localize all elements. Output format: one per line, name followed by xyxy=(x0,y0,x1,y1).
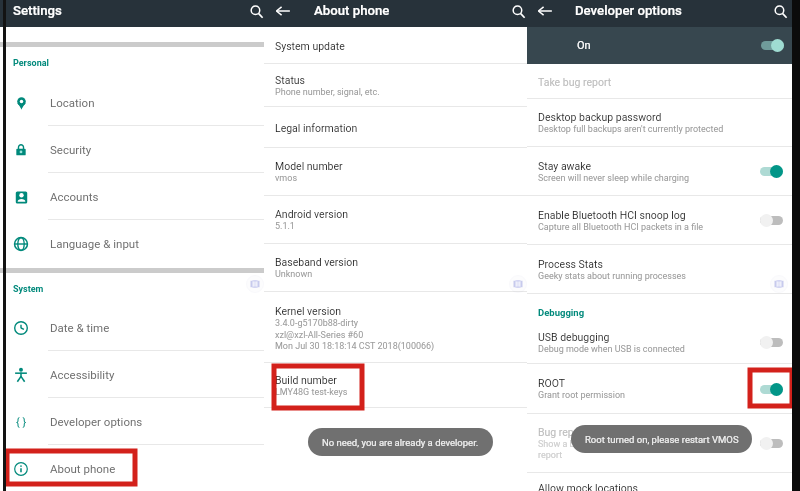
button[interactable]: Location xyxy=(0,79,264,126)
button[interactable]: Desktop backup password xyxy=(527,99,800,147)
staticText: report xyxy=(538,450,563,461)
staticText: Accounts xyxy=(50,190,99,203)
staticText: System xyxy=(13,284,44,295)
staticText: Baseband version xyxy=(275,256,359,268)
staticText: Desktop backup password xyxy=(538,111,662,123)
staticText: Process Stats xyxy=(538,258,603,270)
button[interactable]: Bug report shortcut xyxy=(527,414,800,473)
staticText: USB debugging xyxy=(538,331,610,343)
button[interactable]: Status xyxy=(264,64,527,107)
button[interactable]: About phone xyxy=(0,445,264,491)
staticText: Status xyxy=(275,74,306,86)
staticText: Debug mode when USB is connected xyxy=(538,344,685,355)
staticText: Model number xyxy=(275,160,343,172)
button[interactable]: { } xyxy=(0,398,264,445)
button[interactable]: Baseband version xyxy=(264,244,527,292)
staticText: On xyxy=(577,39,591,52)
staticText: About phone xyxy=(50,462,116,475)
button[interactable]: Take bug report xyxy=(527,64,800,99)
staticText: Enable Bluetooth HCI snoop log xyxy=(538,209,686,221)
button[interactable]: Search xyxy=(507,0,529,22)
button[interactable]: Navigate up xyxy=(272,0,294,22)
staticText: Geeky stats about running processes xyxy=(538,271,686,282)
staticText: No need, you are already a developer. xyxy=(322,437,479,448)
staticText: 5.1.1 xyxy=(275,221,295,232)
staticText: About phone xyxy=(314,3,390,18)
staticText: Language & input xyxy=(50,237,139,250)
button[interactable]: Enable Bluetooth HCI snoop log xyxy=(527,196,800,245)
staticText: LMY48G test-keys xyxy=(275,387,348,398)
staticText: Security xyxy=(50,143,92,156)
staticText: Personal xyxy=(13,58,49,69)
staticText: Developer options xyxy=(575,3,682,18)
button[interactable]: Search xyxy=(245,0,267,22)
staticText: Build number xyxy=(275,374,337,386)
button[interactable]: Stay awake xyxy=(527,147,800,196)
staticText: Kernel version xyxy=(275,305,342,317)
staticText: ROOT xyxy=(538,377,566,389)
button[interactable]: Security xyxy=(0,126,264,173)
button[interactable]: Search xyxy=(769,0,791,22)
staticText: Capture all Bluetooth HCI packets in a f… xyxy=(538,222,704,233)
staticText: Settings xyxy=(13,3,62,18)
staticText: Developer options xyxy=(50,415,143,428)
staticText: Grant root permission xyxy=(538,390,625,401)
staticText: Stay awake xyxy=(538,160,591,172)
button[interactable]: Accessibility xyxy=(0,351,264,398)
button[interactable]: Accounts xyxy=(0,173,264,220)
staticText: System update xyxy=(275,40,345,52)
staticText: Root turned on, please restart VMOS xyxy=(585,434,739,445)
staticText: Unknown xyxy=(275,269,313,280)
staticText: Phone number, signal, etc. xyxy=(275,87,380,98)
button[interactable]: USB debugging xyxy=(527,321,800,364)
button[interactable]: Language & input xyxy=(0,220,264,267)
button[interactable]: Android version xyxy=(264,196,527,244)
button[interactable]: ROOT xyxy=(527,364,800,414)
staticText: 3.4.0-g5170b88-dirty xzl@xzl-All-Series … xyxy=(275,318,435,351)
button[interactable]: Legal information xyxy=(264,107,527,148)
button[interactable]: System update xyxy=(264,27,527,64)
button[interactable]: Date & time xyxy=(0,304,264,351)
button[interactable]: Model number xyxy=(264,148,527,196)
staticText: Date & time xyxy=(50,321,110,334)
button[interactable]: Navigate up xyxy=(534,0,556,22)
staticText: Debugging xyxy=(538,307,585,318)
staticText: Screen will never sleep while charging xyxy=(538,173,689,184)
button[interactable]: Kernel version xyxy=(264,292,527,363)
staticText: { } xyxy=(16,416,27,429)
staticText: Location xyxy=(50,96,95,109)
staticText: Take bug report xyxy=(538,76,612,88)
staticText: Android version xyxy=(275,208,348,220)
staticText: Bug report shortcut xyxy=(538,426,629,438)
button[interactable]: On xyxy=(527,27,800,64)
staticText: Legal information xyxy=(275,122,358,134)
button[interactable]: Allow mock locations xyxy=(527,473,800,491)
staticText: Show a button in the power menu for taki… xyxy=(538,439,737,450)
staticText: Allow mock locations xyxy=(538,482,639,491)
button[interactable]: Build number xyxy=(264,363,527,408)
button[interactable]: Process Stats xyxy=(527,245,800,294)
staticText: vmos xyxy=(275,173,298,184)
staticText: Desktop full backups aren't currently pr… xyxy=(538,124,724,135)
staticText: Accessibility xyxy=(50,368,115,381)
